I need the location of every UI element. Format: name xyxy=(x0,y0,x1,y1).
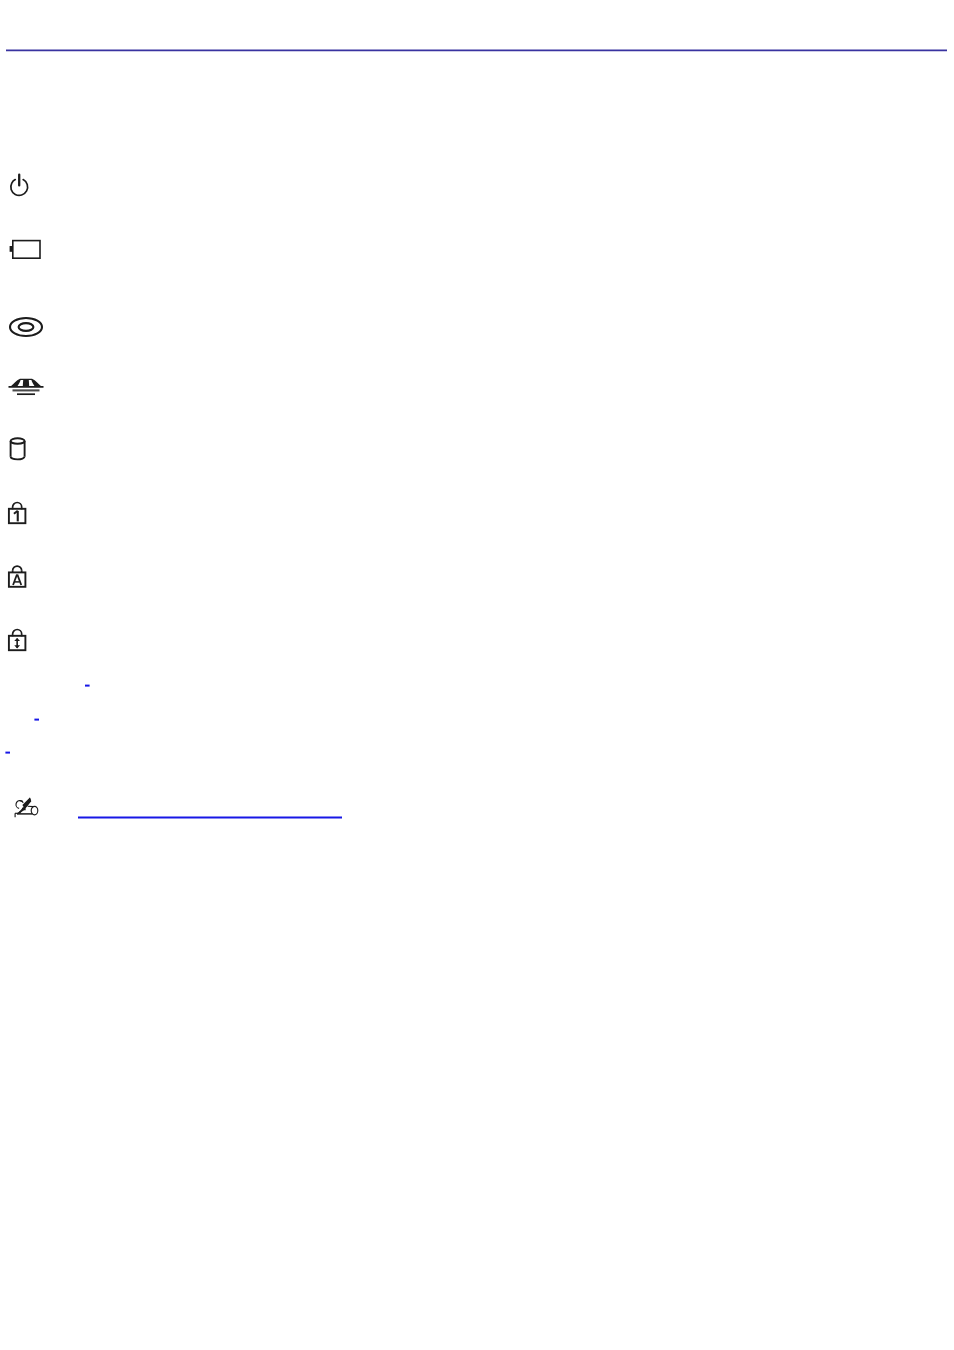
button[interactable]: Capital lock indicator xyxy=(0,477,954,540)
button[interactable]: Removable drive indicator xyxy=(0,352,954,414)
button[interactable]: Support website link xyxy=(0,742,954,776)
button[interactable]: Drive activity indicator xyxy=(0,234,954,294)
button[interactable]: Battery charge indicator xyxy=(0,172,954,234)
button[interactable]: Scroll lock indicator xyxy=(0,540,954,602)
button[interactable]: Number lock indicator xyxy=(0,414,954,477)
button[interactable]: Wireless / network indicator xyxy=(0,294,954,352)
